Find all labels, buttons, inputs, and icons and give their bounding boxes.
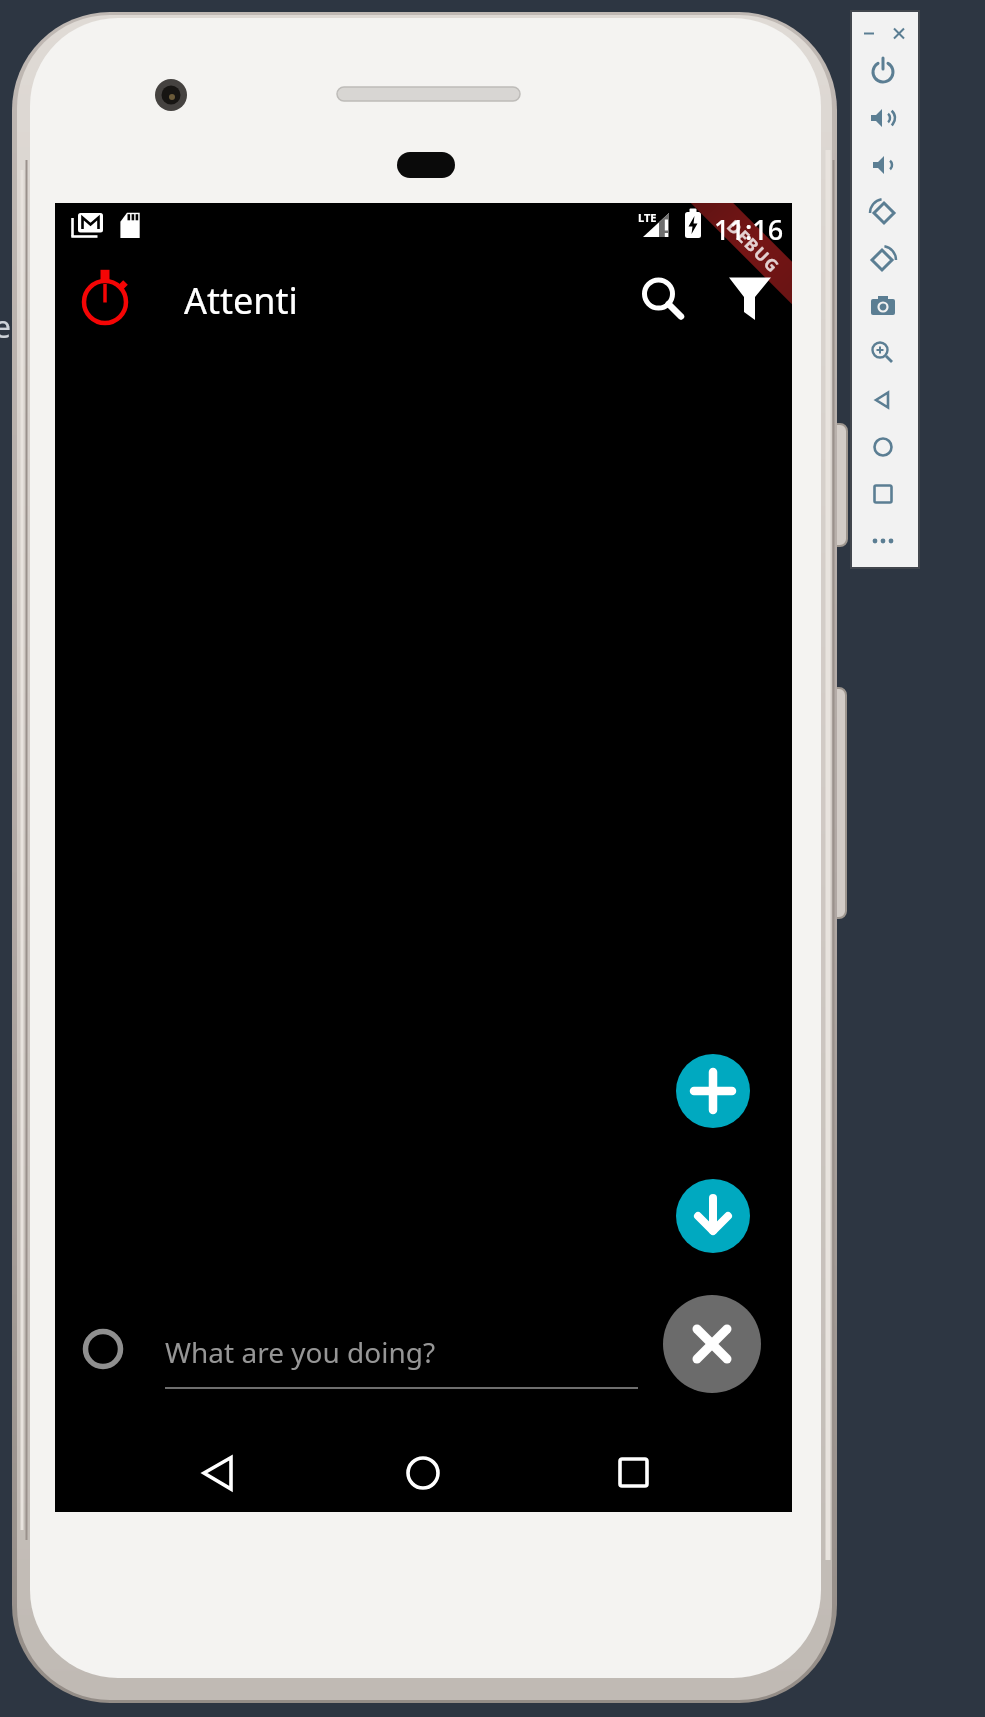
button[interactable] bbox=[632, 268, 688, 324]
button[interactable] bbox=[863, 192, 903, 232]
staticText: What are you doing? bbox=[165, 1333, 436, 1371]
staticText: LTE bbox=[638, 210, 657, 225]
button[interactable] bbox=[863, 380, 903, 420]
button[interactable] bbox=[863, 427, 903, 467]
staticText: e. bbox=[0, 306, 19, 347]
staticText: DEBUG bbox=[722, 215, 785, 278]
button[interactable] bbox=[863, 145, 903, 185]
button[interactable] bbox=[187, 1443, 247, 1503]
button[interactable] bbox=[863, 333, 903, 373]
button[interactable] bbox=[676, 1054, 750, 1128]
button[interactable] bbox=[722, 268, 778, 324]
button[interactable] bbox=[863, 286, 903, 326]
staticText: 11:16 bbox=[714, 211, 784, 248]
button[interactable] bbox=[603, 1443, 663, 1503]
button[interactable] bbox=[863, 474, 903, 514]
button[interactable]: What are you doing? bbox=[161, 1329, 641, 1395]
button[interactable] bbox=[863, 521, 903, 561]
button[interactable] bbox=[857, 21, 881, 45]
button[interactable] bbox=[676, 1179, 750, 1253]
button[interactable] bbox=[863, 98, 903, 138]
button[interactable] bbox=[663, 1295, 761, 1393]
button[interactable] bbox=[887, 21, 911, 45]
button[interactable] bbox=[863, 239, 903, 279]
staticText: Attenti bbox=[184, 276, 298, 325]
button[interactable] bbox=[863, 51, 903, 91]
button[interactable] bbox=[393, 1443, 453, 1503]
button[interactable] bbox=[77, 1323, 129, 1375]
